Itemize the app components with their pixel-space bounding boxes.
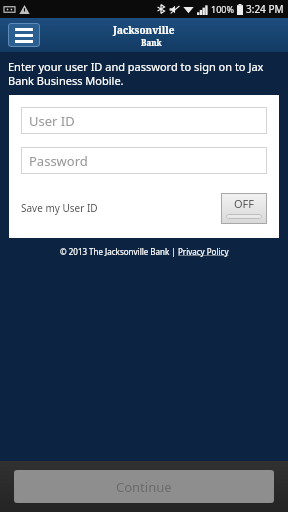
button[interactable]: User ID (21, 107, 267, 134)
staticText: Bank (141, 37, 162, 48)
staticText: 3:24 PM (246, 2, 284, 16)
staticText: User ID (29, 112, 75, 130)
button[interactable]: Password (21, 147, 267, 174)
staticText: 100% (211, 3, 234, 15)
staticText: Save my User ID (21, 201, 98, 215)
staticText: Continue (116, 478, 172, 496)
button[interactable]: Save my User ID toggle, off (221, 193, 267, 224)
staticText: Jacksonville (113, 23, 175, 37)
staticText: OFF (234, 196, 255, 211)
staticText: Password (29, 152, 88, 170)
staticText: Enter your user ID and password to sign … (8, 59, 276, 88)
button[interactable]: Menu (8, 23, 40, 47)
button[interactable]: Privacy Policy (178, 246, 229, 257)
button[interactable]: Continue (14, 470, 274, 503)
staticText: © 2013 The Jacksonville Bank | (60, 246, 178, 257)
